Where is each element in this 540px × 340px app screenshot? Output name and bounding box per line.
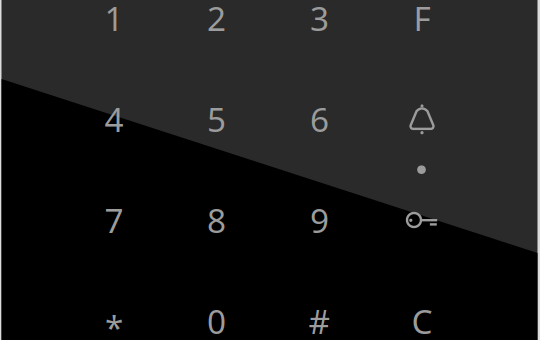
button[interactable]: 7: [63, 170, 165, 270]
staticText: 0: [207, 299, 226, 340]
staticText: 4: [104, 97, 123, 141]
button[interactable]: 8: [165, 170, 267, 270]
button[interactable]: 4: [63, 69, 165, 169]
button[interactable]: 1: [63, 0, 165, 68]
button[interactable]: 3: [268, 0, 370, 68]
staticText: 8: [207, 198, 226, 242]
button[interactable]: 9: [268, 170, 370, 270]
staticText: 9: [310, 198, 329, 242]
staticText: 1: [104, 0, 123, 40]
button[interactable]: Unlock door: [371, 170, 473, 270]
staticText: 6: [310, 97, 329, 141]
staticText: 7: [104, 198, 123, 242]
button[interactable]: 6: [268, 69, 370, 169]
staticText: #: [308, 299, 330, 340]
staticText: *: [105, 305, 123, 340]
button[interactable]: F: [371, 0, 473, 68]
button[interactable]: 2: [165, 0, 267, 68]
button[interactable]: #: [268, 271, 370, 340]
button[interactable]: Doorbell: [371, 69, 473, 169]
staticText: 2: [207, 0, 226, 40]
button[interactable]: 0: [165, 271, 267, 340]
button[interactable]: C: [371, 271, 473, 340]
staticText: 5: [207, 97, 226, 141]
staticText: F: [413, 0, 430, 40]
button[interactable]: 5: [165, 69, 267, 169]
staticText: C: [411, 299, 432, 340]
staticText: 3: [310, 0, 329, 40]
button[interactable]: *: [63, 271, 165, 340]
